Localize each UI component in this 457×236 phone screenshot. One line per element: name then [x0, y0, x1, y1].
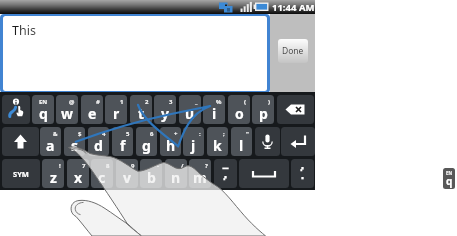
staticText: %	[216, 98, 222, 106]
staticText: x	[74, 168, 83, 187]
staticText: 1	[120, 98, 124, 106]
staticText: :	[199, 130, 201, 138]
staticText: g	[142, 136, 151, 155]
staticText: i	[212, 104, 217, 123]
staticText: !	[59, 162, 61, 170]
button[interactable]: Done	[278, 39, 308, 63]
staticText: SYM	[13, 169, 29, 179]
staticText: ?	[205, 162, 208, 170]
button[interactable]: space	[239, 159, 289, 188]
staticText: )	[268, 98, 271, 106]
staticText: q	[39, 104, 48, 123]
button[interactable]: m	[189, 159, 211, 188]
staticText: -	[157, 162, 159, 170]
button[interactable]: q	[32, 95, 54, 124]
button[interactable]: h	[160, 127, 181, 156]
button[interactable]: r	[105, 95, 127, 124]
staticText: c	[98, 168, 106, 187]
button[interactable]: a	[40, 127, 61, 156]
button[interactable]: mic	[255, 127, 280, 156]
staticText: v	[123, 168, 131, 187]
button[interactable]: SYM	[2, 159, 40, 188]
staticText: h	[166, 136, 176, 155]
staticText: y	[161, 104, 169, 123]
staticText: e	[88, 104, 97, 123]
button[interactable]: f	[112, 127, 133, 156]
button[interactable]: period	[291, 159, 314, 188]
staticText: 5	[126, 130, 130, 138]
staticText: 3	[169, 98, 173, 106]
staticText: @	[69, 98, 75, 106]
staticText: j	[191, 136, 196, 155]
staticText: n	[171, 168, 181, 187]
staticText: ;	[223, 130, 225, 138]
staticText: 7	[82, 162, 86, 170]
button[interactable]: j	[183, 127, 204, 156]
button[interactable]: i	[203, 95, 225, 124]
button[interactable]: This	[3, 16, 267, 91]
staticText: $	[78, 130, 82, 138]
staticText: Done	[282, 45, 304, 57]
button[interactable]: t	[130, 95, 152, 124]
staticText: u	[185, 104, 195, 123]
staticText: 4	[102, 130, 106, 138]
button[interactable]: y	[154, 95, 176, 124]
button[interactable]: g	[136, 127, 157, 156]
staticText: #	[96, 98, 100, 106]
button[interactable]: u	[179, 95, 201, 124]
button[interactable]: l	[231, 127, 252, 156]
staticText: "	[246, 130, 249, 138]
button[interactable]: semi	[214, 159, 237, 188]
staticText: /	[181, 162, 184, 170]
staticText: b	[147, 168, 156, 187]
staticText: l	[239, 136, 244, 155]
staticText: &	[53, 130, 58, 138]
button[interactable]: back	[277, 95, 314, 124]
staticText: EN	[446, 170, 453, 176]
staticText: q	[446, 174, 453, 188]
staticText: d	[94, 136, 103, 155]
staticText: p	[259, 104, 268, 123]
staticText: 9	[131, 162, 135, 170]
button[interactable]: EN	[443, 168, 455, 189]
staticText: z	[50, 168, 57, 187]
staticText: 2	[145, 98, 149, 106]
staticText: EN	[39, 98, 48, 106]
staticText: 11:44 AM	[272, 1, 315, 14]
button[interactable]: b	[140, 159, 162, 188]
button[interactable]: shift	[2, 127, 39, 156]
button[interactable]: n	[165, 159, 187, 188]
button[interactable]: s	[64, 127, 85, 156]
button[interactable]: d	[88, 127, 109, 156]
button[interactable]: o	[228, 95, 250, 124]
staticText: w	[61, 104, 73, 123]
button[interactable]: e	[81, 95, 103, 124]
button[interactable]: enter	[281, 127, 315, 156]
button[interactable]: z	[42, 159, 64, 188]
staticText: s	[71, 136, 79, 155]
button[interactable]: swipe	[2, 95, 30, 124]
staticText: _	[195, 98, 198, 106]
staticText: 6	[150, 130, 154, 138]
staticText: r	[113, 104, 120, 123]
staticText: This	[12, 22, 36, 39]
staticText: o	[235, 104, 244, 123]
staticText: 8	[106, 162, 110, 170]
staticText: k	[213, 136, 222, 155]
button[interactable]: v	[116, 159, 138, 188]
button[interactable]: k	[207, 127, 228, 156]
staticText: t	[138, 104, 145, 123]
staticText: a	[46, 136, 55, 155]
staticText: f	[120, 136, 126, 155]
staticText: +	[174, 130, 178, 138]
button[interactable]: w	[56, 95, 78, 124]
button[interactable]: x	[67, 159, 89, 188]
button[interactable]: c	[91, 159, 113, 188]
staticText: m	[193, 168, 207, 187]
staticText: (	[244, 98, 247, 106]
button[interactable]: p	[252, 95, 274, 124]
